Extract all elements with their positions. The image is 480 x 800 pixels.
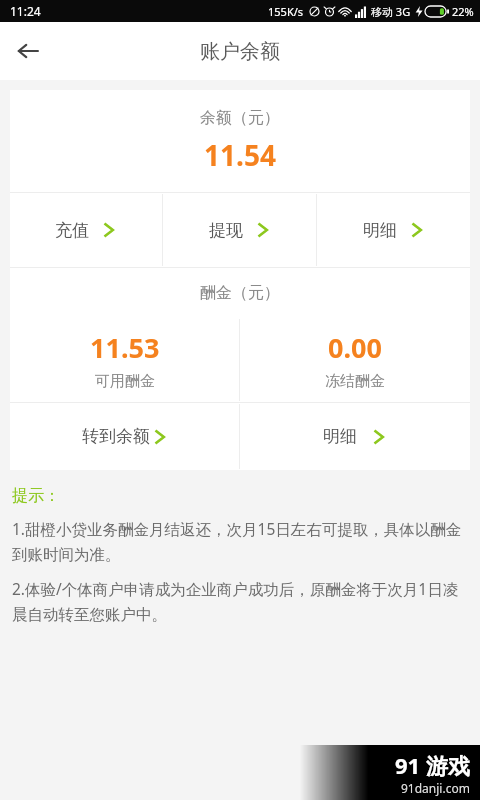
staticText: 明细	[323, 426, 357, 447]
staticText: 91danji.com	[401, 780, 470, 796]
staticText: 2.体验/个体商户申请成为企业商户成功后，原酬金将于次月1日凌晨自动转至您账户中…	[12, 578, 468, 624]
staticText: 1.甜橙小贷业务酬金月结返还，次月15日左右可提取，具体以酬金到账时间为准。	[12, 518, 468, 564]
staticText: 移动 3G	[371, 4, 411, 19]
button[interactable]: 提现	[163, 193, 316, 267]
staticText: 明细	[363, 220, 397, 241]
staticText: 22%	[452, 4, 474, 19]
staticText: 11:24	[10, 3, 41, 19]
staticText: 余额（元）	[200, 108, 280, 128]
staticText: 酬金（元）	[200, 283, 280, 303]
staticText: 账户余额	[200, 39, 280, 64]
button[interactable]: 充值	[10, 193, 162, 267]
button[interactable]: Back	[0, 23, 56, 79]
staticText: 11.54	[204, 136, 276, 174]
button[interactable]: 明细	[240, 403, 470, 470]
staticText: 冻结酬金	[325, 372, 385, 391]
button[interactable]: 转到余额	[10, 403, 239, 470]
staticText: 0.00	[328, 329, 382, 366]
staticText: 91 游戏	[395, 750, 470, 780]
staticText: 可用酬金	[95, 372, 155, 391]
staticText: 11.53	[90, 329, 160, 366]
staticText: 转到余额	[82, 426, 150, 447]
staticText: 提现	[209, 220, 243, 241]
staticText: 充值	[55, 220, 89, 241]
staticText: 提示：	[12, 486, 60, 506]
staticText: 155K/s	[268, 4, 304, 19]
button[interactable]: 明细	[317, 193, 470, 267]
